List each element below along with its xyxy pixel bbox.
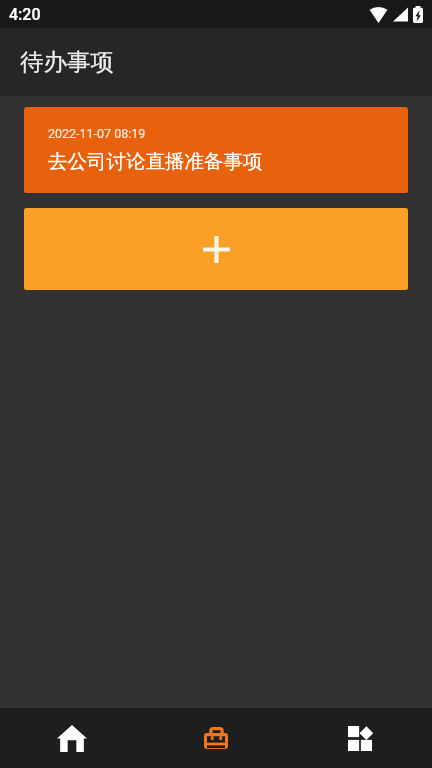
staticText: 4:20	[9, 5, 41, 24]
button[interactable]: Add todo	[24, 208, 408, 290]
staticText: 2022-11-07 08:19	[48, 126, 146, 141]
button[interactable]: Home	[0, 708, 144, 768]
button[interactable]: 2022-11-07 08:19	[24, 107, 408, 193]
button[interactable]: Work	[144, 708, 288, 768]
staticText: 待办事项	[20, 47, 114, 77]
staticText: 去公司讨论直播准备事项	[48, 149, 263, 174]
button[interactable]: Dashboard	[288, 708, 432, 768]
